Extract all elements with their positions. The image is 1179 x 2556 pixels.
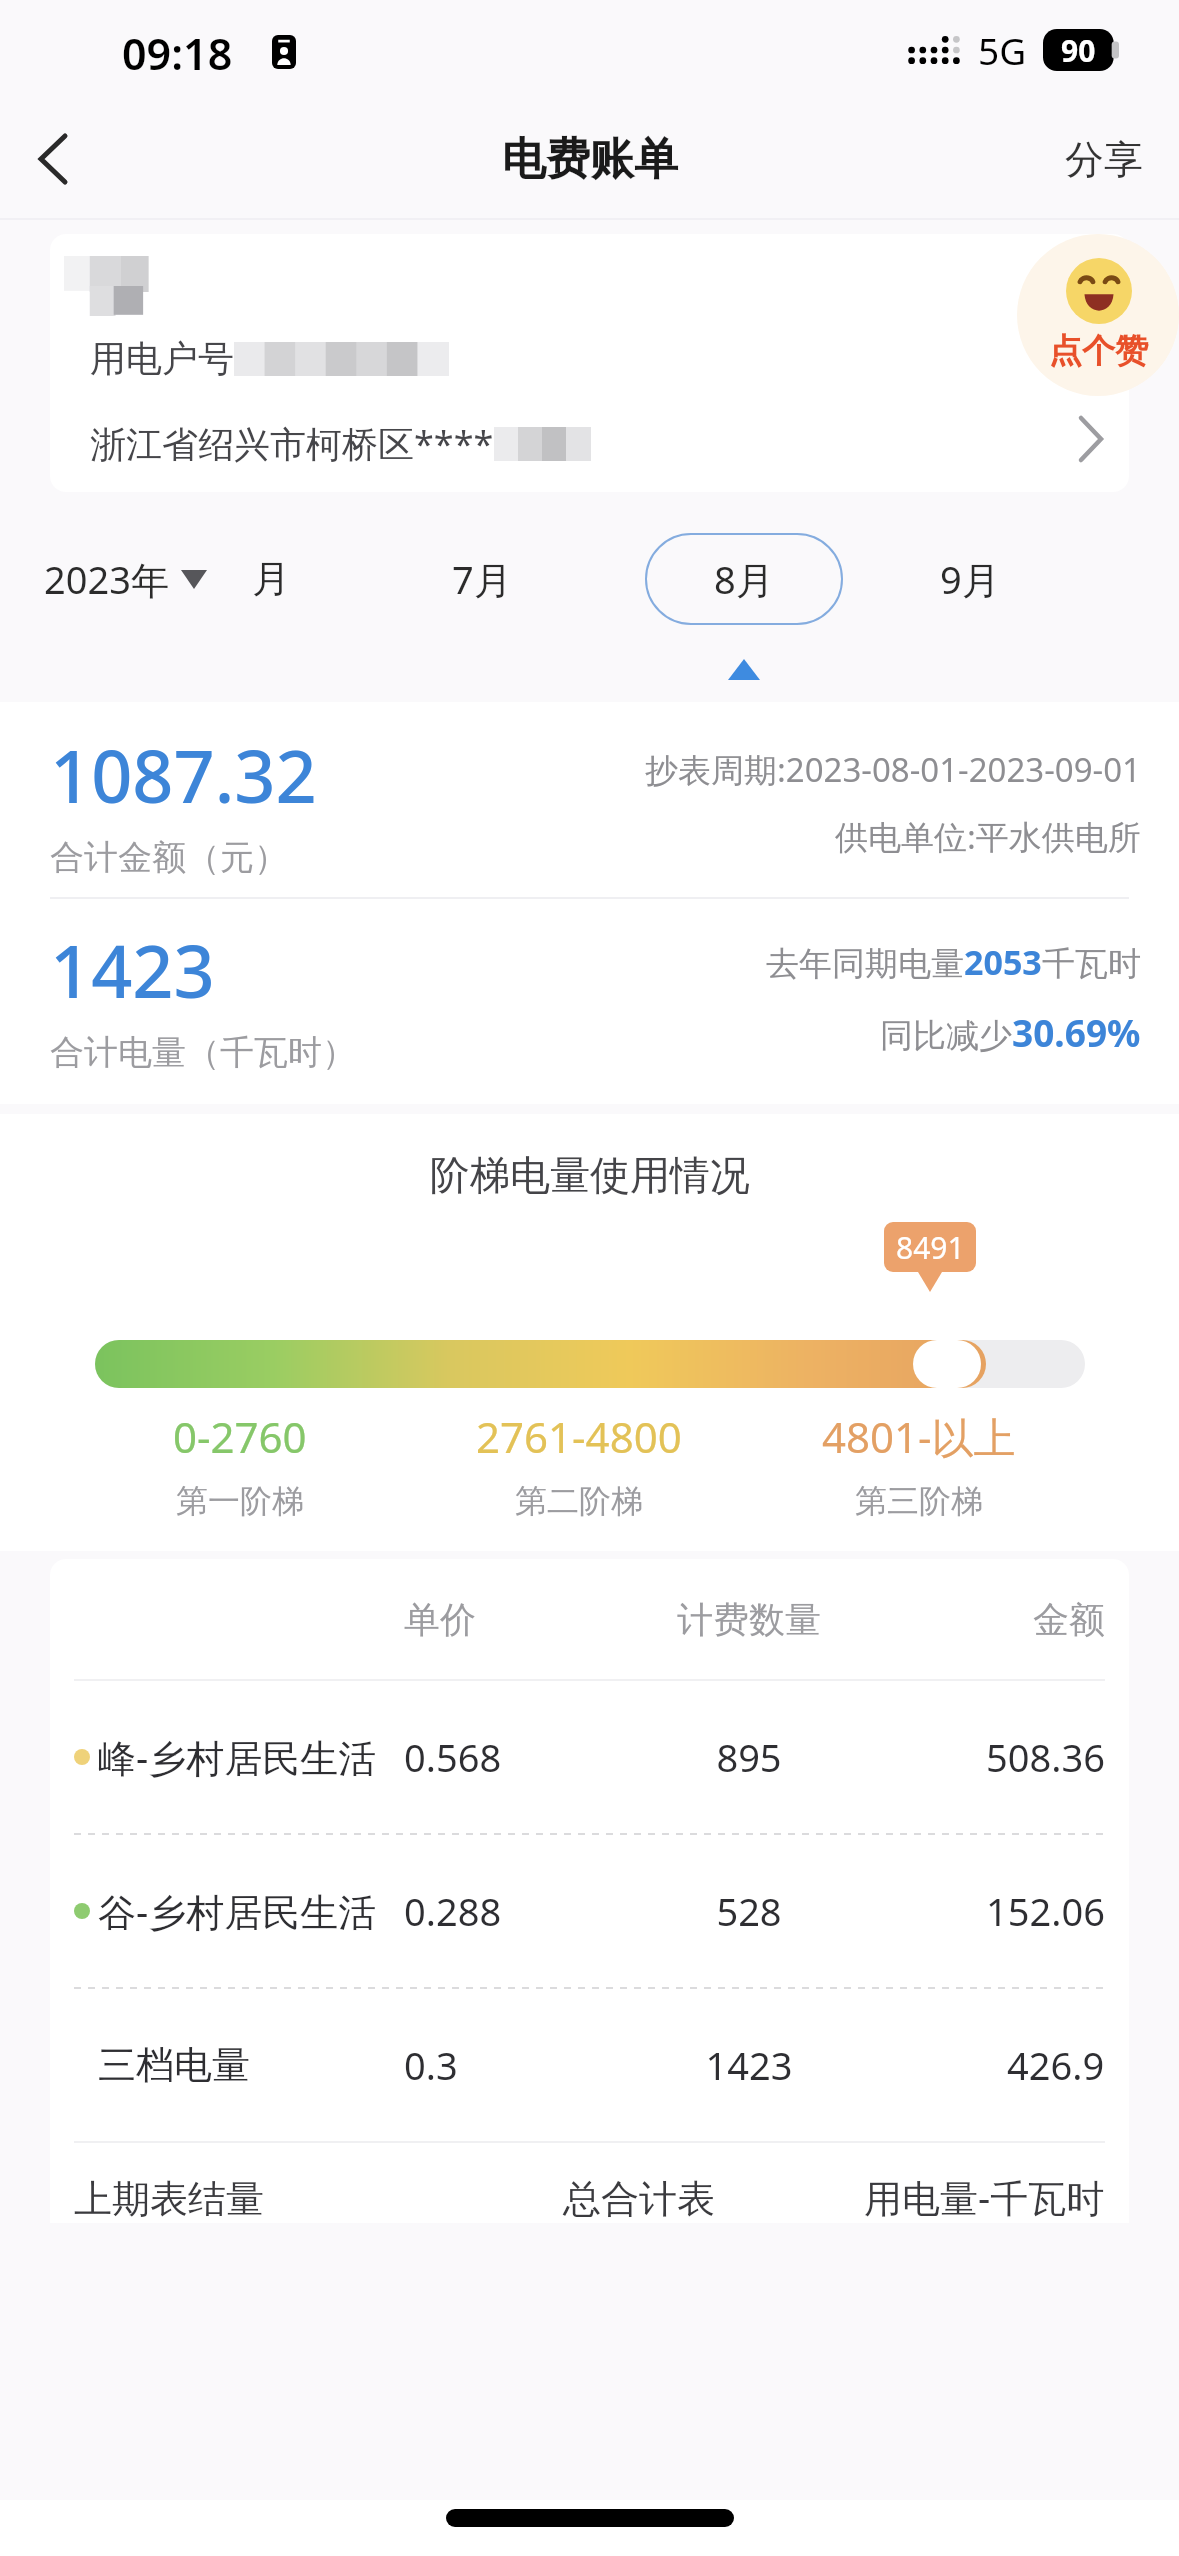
button[interactable]: 峰-乡村居民生活 <box>50 1681 1129 1833</box>
staticText: 用电户号 <box>90 336 234 381</box>
staticText: 1423 <box>50 921 215 1019</box>
button[interactable]: 点个赞 <box>1017 234 1179 396</box>
button[interactable]: 谷-乡村居民生活 <box>50 1835 1129 1987</box>
staticText: 528 <box>604 1885 894 1937</box>
staticText: 30.69% <box>1012 1007 1141 1057</box>
staticText: 1087.32 <box>50 726 317 824</box>
staticText: 4801-以上 <box>822 1408 1016 1465</box>
staticText: 月 <box>252 555 290 603</box>
button[interactable]: 分享 <box>1029 117 1179 202</box>
staticText: 单价 <box>404 1597 604 1642</box>
staticText: 8491 <box>896 1227 965 1268</box>
staticText: 第三阶梯 <box>855 1481 983 1521</box>
staticText: 2053 <box>964 939 1042 985</box>
staticText: 电费账单 <box>502 132 678 187</box>
staticText: 合计金额（元） <box>50 836 288 879</box>
staticText: 浙江省绍兴市柯桥区**** <box>90 419 494 468</box>
button[interactable]: Back <box>6 113 98 205</box>
staticText: 分享 <box>1065 135 1143 184</box>
button[interactable]: 三档电量 <box>50 1989 1129 2141</box>
staticText: 去年同期电量 <box>766 943 964 985</box>
staticText: 0.288 <box>404 1885 604 1937</box>
button[interactable]: 9月 <box>940 553 1000 605</box>
staticText: 总合计表 <box>563 2175 715 2223</box>
staticText: 09:18 <box>122 24 233 83</box>
button[interactable]: 用电户号 <box>50 234 1129 492</box>
staticText: 点个赞 <box>1049 330 1148 372</box>
staticText: 供电单位:平水供电所 <box>835 814 1141 859</box>
staticText: 同比减少 <box>880 1015 1012 1057</box>
staticText: 谷-乡村居民生活 <box>98 1885 377 1937</box>
staticText: 90 <box>1061 30 1096 71</box>
staticText: 阶梯电量使用情况 <box>430 1150 750 1200</box>
staticText: 合计电量（千瓦时） <box>50 1031 356 1074</box>
staticText: 第一阶梯 <box>176 1481 304 1521</box>
button[interactable]: 7月 <box>452 553 512 605</box>
staticText: 895 <box>604 1731 894 1783</box>
staticText: 2761-4800 <box>476 1408 682 1465</box>
staticText: 上期表结量 <box>74 2175 414 2223</box>
staticText: 2023年 <box>44 553 169 605</box>
button[interactable]: 8月 <box>645 533 843 625</box>
staticText: 8月 <box>714 553 774 605</box>
staticText: 1423 <box>604 2039 894 2091</box>
staticText: 金额 <box>1033 1597 1105 1642</box>
staticText: 0.568 <box>404 1731 604 1783</box>
button[interactable]: Usage level <box>913 1340 981 1388</box>
staticText: 峰-乡村居民生活 <box>98 1731 377 1783</box>
staticText: 抄表周期:2023-08-01-2023-09-01 <box>645 747 1141 792</box>
staticText: 第二阶梯 <box>515 1481 643 1521</box>
staticText: 152.06 <box>986 1885 1105 1937</box>
staticText: 426.9 <box>1007 2039 1105 2091</box>
button[interactable]: 2023年 <box>44 553 207 605</box>
staticText: 计费数量 <box>604 1597 894 1642</box>
staticText: 5G <box>978 25 1027 75</box>
staticText: 0-2760 <box>173 1408 307 1465</box>
staticText: 千瓦时 <box>1042 943 1141 985</box>
staticText: 0.3 <box>404 2039 604 2091</box>
staticText: 用电量-千瓦时 <box>864 2171 1105 2223</box>
staticText: 508.36 <box>986 1731 1105 1783</box>
staticText: 三档电量 <box>98 2041 250 2089</box>
